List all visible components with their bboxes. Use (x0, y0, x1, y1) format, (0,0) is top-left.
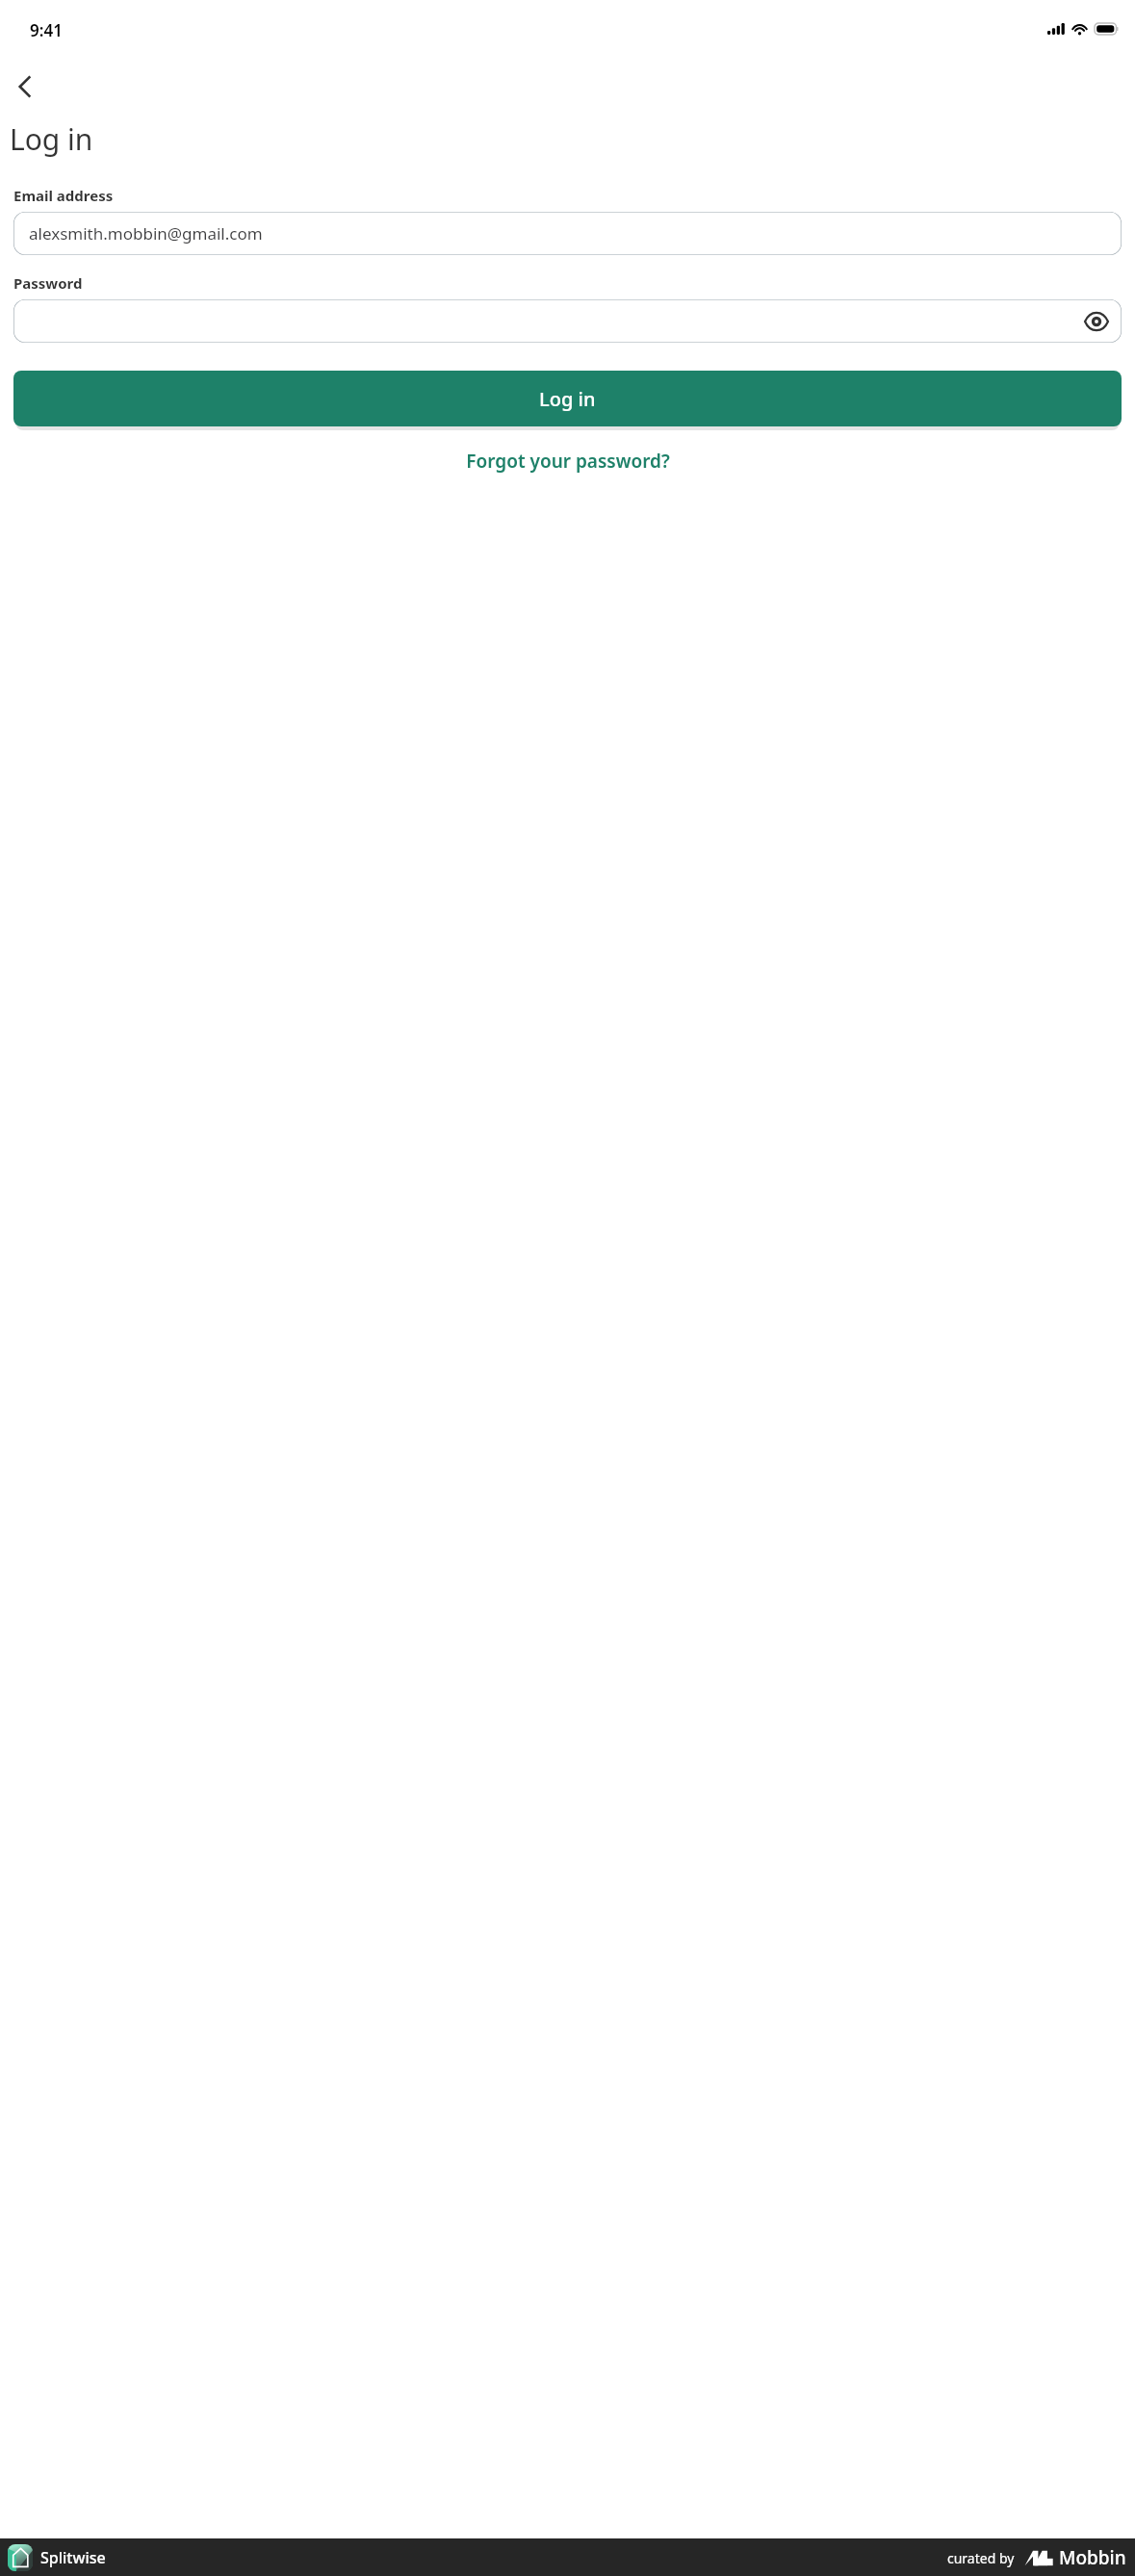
staticText: Mobbin (1059, 2545, 1126, 2570)
staticText: Email address (13, 186, 114, 205)
button[interactable]: alexsmith.mobbin@gmail.com (13, 212, 1122, 255)
staticText: Log in (539, 386, 596, 412)
staticText: Forgot your password? (466, 449, 670, 474)
staticText: Password (13, 273, 83, 293)
button[interactable]: Forgot your password? (13, 443, 1122, 479)
button[interactable]: Show password (1077, 302, 1116, 341)
staticText: curated by (947, 2549, 1015, 2567)
staticText: Splitwise (40, 2547, 106, 2568)
button[interactable]: Log in (13, 371, 1122, 426)
staticText: alexsmith.mobbin@gmail.com (29, 222, 263, 245)
button[interactable]: Show password (13, 299, 1122, 343)
staticText: 9:41 (30, 19, 63, 41)
button[interactable]: Back (2, 64, 48, 110)
staticText: Log in (10, 119, 93, 159)
